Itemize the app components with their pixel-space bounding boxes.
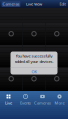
button[interactable]: Camera feed (0, 22, 22, 45)
button[interactable]: More (51, 94, 68, 110)
staticText: You have successfully (15, 53, 52, 59)
staticText: Cameras (2, 1, 19, 7)
button[interactable]: OK (10, 67, 57, 76)
button[interactable]: Camera feed (46, 67, 68, 90)
button[interactable]: Events (17, 94, 34, 110)
button[interactable]: Camera feed (23, 45, 45, 67)
staticText: Live (5, 100, 12, 105)
button[interactable]: Edit (59, 1, 66, 7)
button[interactable]: Cameras (2, 1, 20, 7)
staticText: Cameras (34, 100, 51, 105)
button[interactable]: Camera feed (46, 22, 68, 45)
button[interactable]: Cameras (34, 94, 51, 110)
button[interactable]: Camera feed (46, 45, 68, 67)
staticText: Events (20, 100, 31, 105)
button[interactable]: Camera feed (23, 67, 45, 90)
button[interactable]: Camera feed (0, 45, 22, 67)
button[interactable]: Live (0, 94, 17, 110)
staticText: Edit (59, 1, 65, 7)
button[interactable]: Camera feed (23, 22, 45, 45)
button[interactable]: Camera feed (0, 67, 22, 90)
staticText: added all your devices. (14, 59, 53, 64)
staticText: OK (31, 69, 36, 74)
staticText: Live View (26, 1, 42, 7)
staticText: More (54, 100, 64, 105)
